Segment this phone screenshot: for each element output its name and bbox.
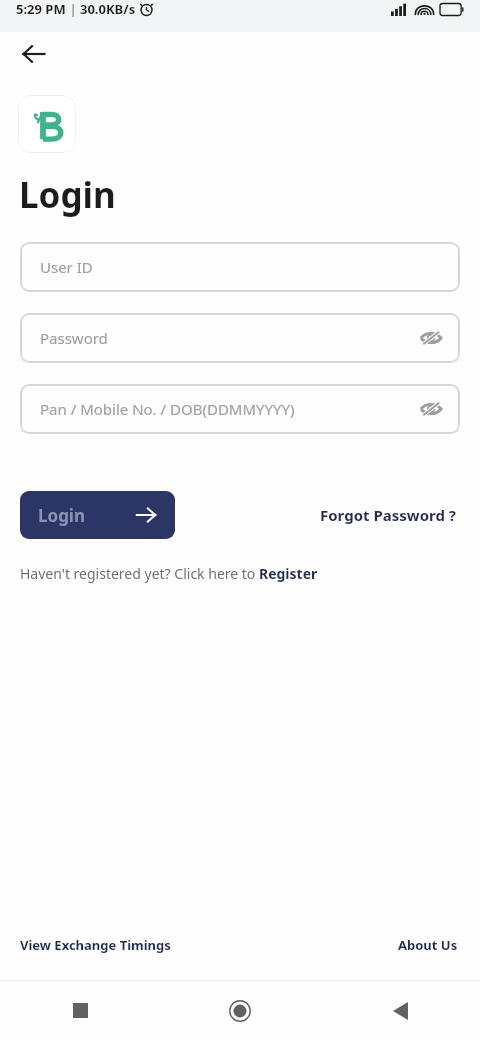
staticText: Login bbox=[19, 171, 116, 219]
button[interactable]: Password bbox=[20, 313, 460, 363]
button[interactable]: Back bbox=[12, 32, 56, 76]
staticText: 5:29 PM bbox=[16, 0, 66, 18]
staticText: Forgot Password ? bbox=[320, 505, 456, 525]
staticText: Pan / Mobile No. / DOB(DDMMYYYY) bbox=[40, 399, 295, 419]
button[interactable]: Login bbox=[20, 491, 175, 539]
button[interactable]: Pan / Mobile No. / DOB(DDMMYYYY) bbox=[20, 384, 460, 434]
button[interactable]: User ID bbox=[20, 242, 460, 292]
button[interactable]: Forgot Password ? bbox=[316, 501, 460, 529]
button[interactable]: Show Pan / Mobile No. / DOB(DDMMYYYY) bbox=[416, 394, 446, 424]
button[interactable]: Show Password bbox=[416, 323, 446, 353]
button[interactable]: Home bbox=[160, 1000, 320, 1022]
staticText: Login bbox=[38, 504, 86, 527]
staticText: View Exchange Timings bbox=[20, 936, 171, 954]
staticText: About Us bbox=[398, 936, 458, 954]
staticText: Password bbox=[40, 328, 108, 348]
button[interactable]: View Exchange Timings bbox=[20, 930, 171, 960]
staticText: 30.0KB/s bbox=[80, 0, 136, 18]
button[interactable]: Back bbox=[320, 1002, 480, 1020]
button[interactable]: Haven't registered yet? Click here to Re… bbox=[20, 564, 318, 583]
staticText: User ID bbox=[40, 257, 93, 277]
staticText: | bbox=[66, 0, 80, 18]
button[interactable]: About Us bbox=[398, 930, 458, 960]
button[interactable]: Recents bbox=[0, 1003, 160, 1018]
staticText: Haven't registered yet? Click here to Re… bbox=[20, 564, 318, 583]
